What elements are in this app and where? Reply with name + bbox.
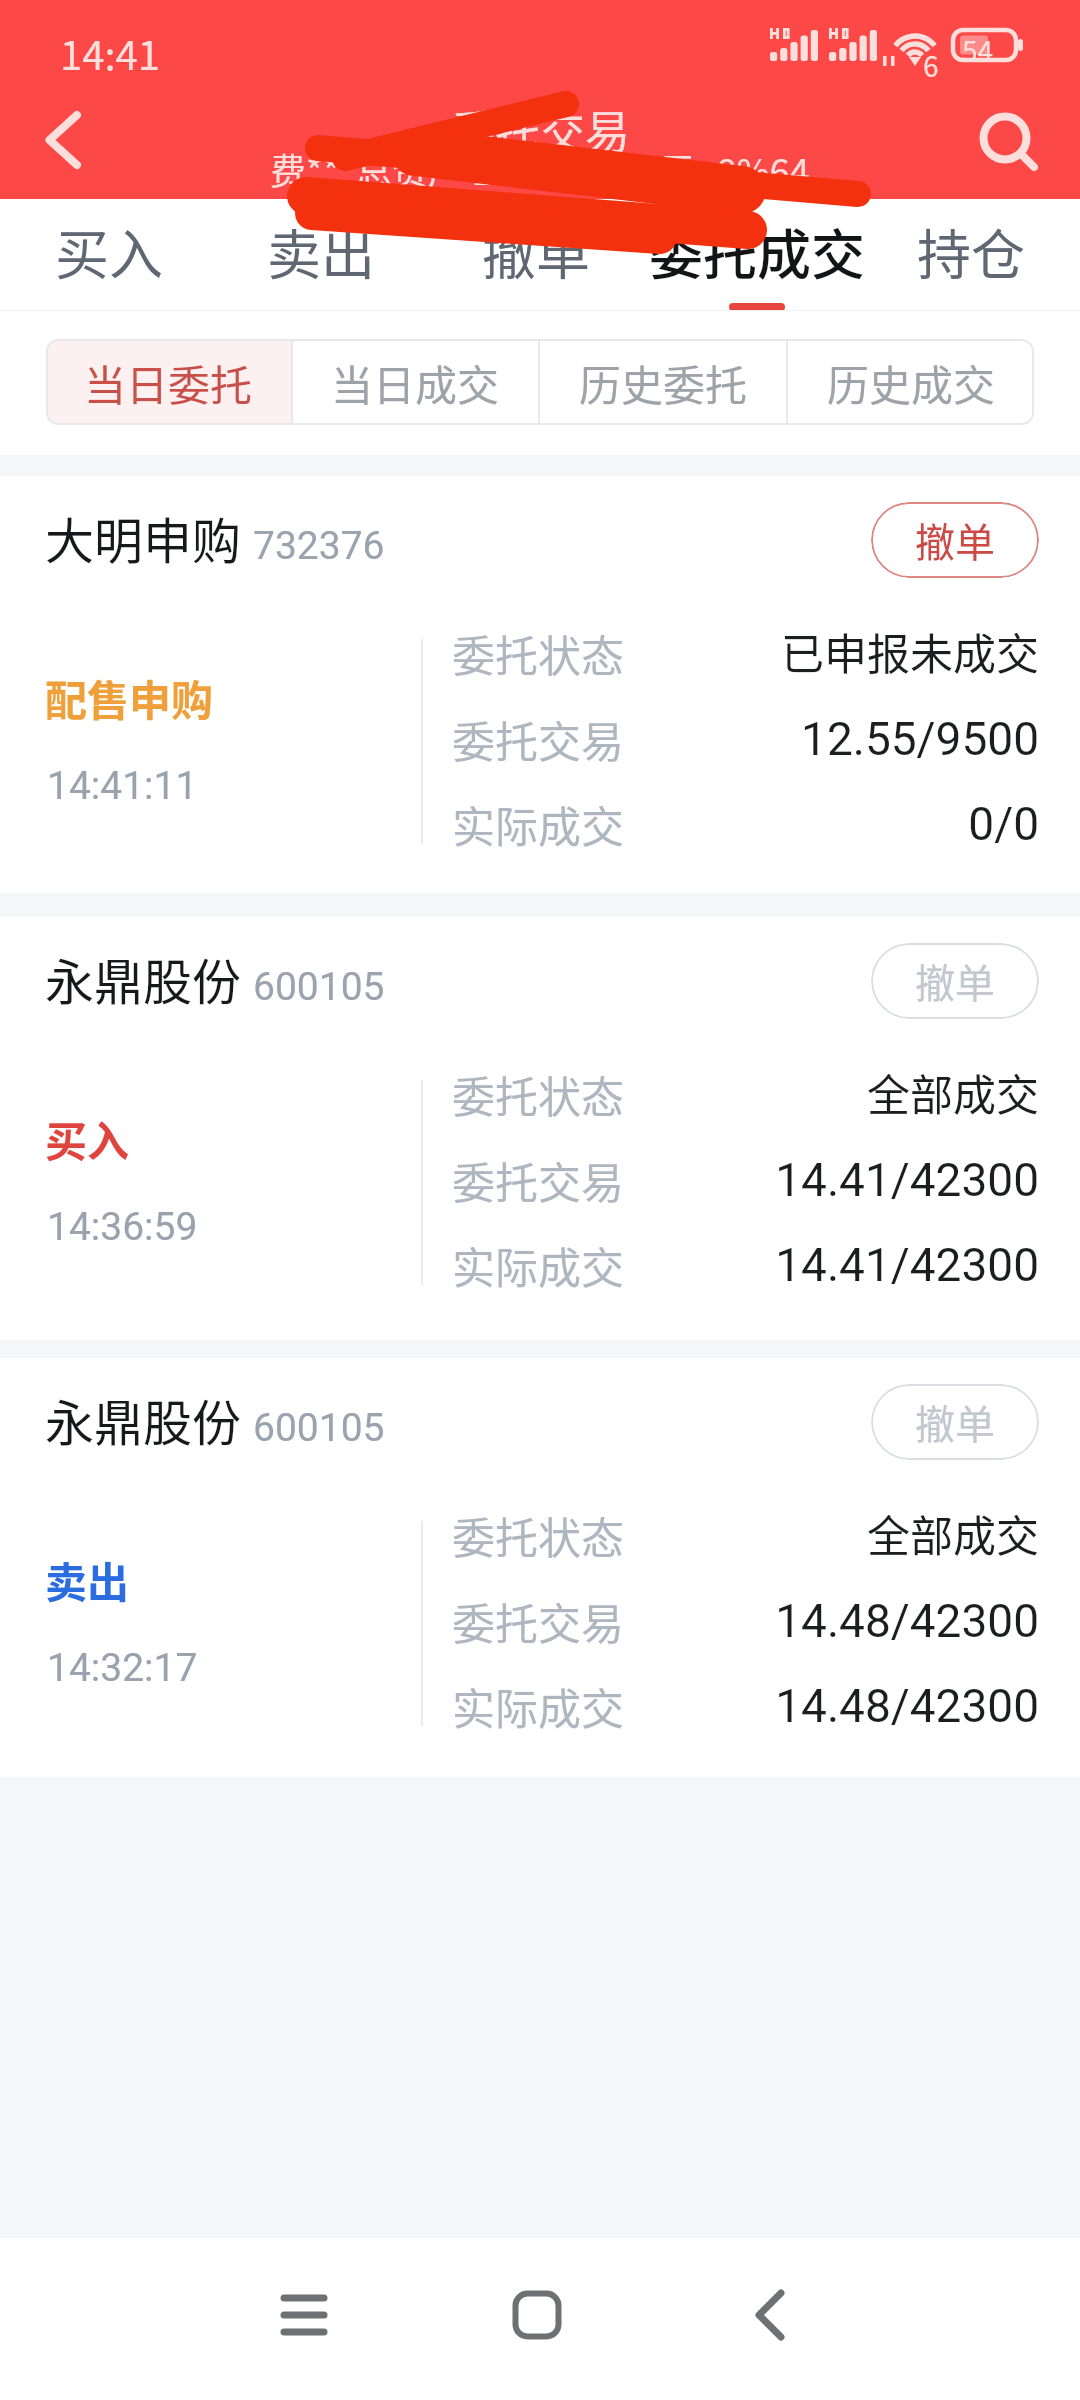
staticText: 0/0 — [600, 797, 1039, 851]
button[interactable]: Home — [497, 2275, 577, 2355]
staticText: 委托交易 — [452, 708, 624, 770]
staticText: 已申报未成交 — [600, 620, 1039, 682]
staticText: 委托交易 — [452, 1590, 624, 1652]
staticText: 历史成交 — [827, 352, 996, 413]
button[interactable]: 委托成交 — [649, 199, 865, 311]
staticText: 600105 — [253, 1405, 385, 1451]
staticText: 14:36:59 — [47, 1204, 198, 1250]
staticText: 14.41/42300 — [600, 1238, 1039, 1292]
button[interactable]: 撤单 — [871, 1384, 1039, 1460]
staticText: 12.55/9500 — [600, 712, 1039, 766]
staticText: 卖出 — [45, 1549, 130, 1610]
button[interactable]: Recent apps — [264, 2275, 344, 2355]
staticText: 14.48/42300 — [600, 1679, 1039, 1733]
staticText: 撤单 — [915, 952, 995, 1010]
staticText: 14.48/42300 — [600, 1594, 1039, 1648]
staticText: 永鼎股份 — [45, 943, 242, 1014]
staticText: 撤单 — [482, 212, 590, 290]
button[interactable]: 当日成交 — [293, 339, 538, 425]
staticText: 14.41/42300 — [600, 1153, 1039, 1207]
staticText: 当日委托 — [84, 352, 253, 413]
button[interactable]: 当日委托 — [46, 339, 291, 425]
staticText: 撤单 — [915, 1393, 995, 1451]
staticText: 委托交易 — [450, 97, 631, 162]
staticText: 14:41 — [60, 24, 160, 82]
staticText: 委托交易 — [452, 1149, 624, 1211]
staticText: 大明申购 — [45, 502, 242, 573]
button[interactable]: 历史成交 — [788, 339, 1034, 425]
staticText: 600105 — [253, 964, 385, 1010]
staticText: 实际成交 — [452, 1234, 624, 1296]
staticText: 54 — [962, 30, 994, 71]
button[interactable]: 卖出 — [256, 199, 386, 311]
staticText: 历史委托 — [579, 352, 748, 413]
button[interactable]: 撤单 — [471, 199, 601, 311]
staticText: 买入 — [45, 1108, 130, 1169]
staticText: 配售申购 — [45, 667, 214, 728]
button[interactable]: Search — [965, 100, 1045, 180]
button[interactable]: 历史委托 — [540, 339, 786, 425]
staticText: 当日成交 — [331, 352, 500, 413]
staticText: 14:41:11 — [47, 763, 198, 809]
button[interactable]: Back — [730, 2275, 810, 2355]
staticText: 委托状态 — [452, 1063, 624, 1125]
button[interactable]: 撤单 — [871, 943, 1039, 1019]
staticText: 14:32:17 — [47, 1645, 198, 1691]
staticText: 委托成交 — [649, 212, 865, 290]
staticText: 全部成交 — [600, 1502, 1039, 1564]
staticText: 买入 — [55, 212, 163, 290]
button[interactable]: 买入 — [44, 199, 174, 311]
staticText: 6 — [923, 45, 939, 86]
staticText: 持仓 — [917, 212, 1025, 290]
staticText: 全部成交 — [600, 1061, 1039, 1123]
staticText: 实际成交 — [452, 793, 624, 855]
staticText: 实际成交 — [452, 1675, 624, 1737]
staticText: 委托状态 — [452, 1504, 624, 1566]
button[interactable]: 撤单 — [871, 502, 1039, 578]
staticText: 费** 总资产 12345 总盈亏 -8%64 — [270, 143, 810, 195]
button[interactable]: 持仓 — [906, 199, 1036, 311]
staticText: 732376 — [253, 523, 385, 569]
staticText: 卖出 — [267, 212, 375, 290]
staticText: 委托状态 — [452, 622, 624, 684]
staticText: 撤单 — [915, 511, 995, 569]
button[interactable]: Back — [24, 100, 104, 180]
staticText: 永鼎股份 — [45, 1384, 242, 1455]
